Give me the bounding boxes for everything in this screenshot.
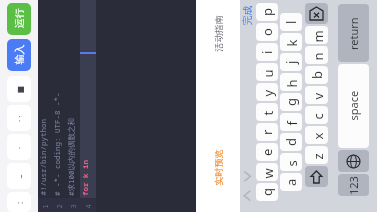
button[interactable]: 活动指南 xyxy=(213,16,224,52)
staticText: v xyxy=(308,92,326,99)
staticText: · · xyxy=(14,115,25,122)
button[interactable]: f xyxy=(280,113,302,131)
button[interactable]: b xyxy=(305,66,328,84)
staticText: : xyxy=(14,201,25,204)
staticText: o xyxy=(258,28,276,36)
button[interactable]: – xyxy=(7,163,31,189)
button[interactable]: q xyxy=(256,183,278,201)
staticText: 输入 xyxy=(12,44,25,64)
staticText: q xyxy=(258,188,276,196)
button[interactable]: c xyxy=(305,106,328,124)
staticText: s xyxy=(282,159,300,166)
staticText: t xyxy=(258,110,276,115)
button[interactable]: : xyxy=(7,192,31,212)
staticText: 4 xyxy=(83,203,93,208)
staticText: 1 xyxy=(40,203,50,208)
staticText: y xyxy=(258,89,276,96)
staticText: · xyxy=(14,146,25,149)
staticText: – xyxy=(14,174,25,178)
button[interactable]: · xyxy=(7,134,31,160)
staticText: w xyxy=(258,167,276,178)
staticText: k xyxy=(282,39,300,46)
button[interactable]: return xyxy=(338,4,369,62)
staticText: # -*- coding: UTF-8 -*- xyxy=(52,92,62,196)
staticText: m xyxy=(308,29,326,42)
button[interactable]: k xyxy=(280,33,302,51)
staticText: r xyxy=(258,129,276,135)
button[interactable]: Switch keyboard xyxy=(338,150,369,172)
staticText: return xyxy=(346,17,361,50)
button[interactable]: 实时预览 xyxy=(213,150,224,186)
staticText: g xyxy=(282,98,300,106)
staticText: x xyxy=(308,132,326,139)
button[interactable]: l xyxy=(280,13,302,31)
button[interactable]: o xyxy=(256,23,278,41)
button[interactable]: m xyxy=(305,26,328,44)
staticText: for k in xyxy=(80,160,90,196)
button[interactable]: 完成 xyxy=(241,6,254,26)
button[interactable]: space xyxy=(338,64,369,148)
staticText: l xyxy=(282,20,300,24)
button[interactable]: p xyxy=(256,3,278,21)
staticText: 运行 xyxy=(12,8,25,28)
staticText: d xyxy=(282,138,300,146)
button[interactable]: h xyxy=(280,73,302,91)
button[interactable]: · · xyxy=(7,105,31,131)
staticText: b xyxy=(308,71,326,79)
button[interactable]: n xyxy=(305,46,328,64)
staticText: j xyxy=(282,60,300,64)
staticText: a xyxy=(282,178,300,186)
button[interactable]: r xyxy=(256,123,278,141)
button[interactable]: x xyxy=(305,126,328,144)
button[interactable]: w xyxy=(256,163,278,181)
staticText: u xyxy=(258,68,276,77)
button[interactable]: t xyxy=(256,103,278,121)
button[interactable]: d xyxy=(280,133,302,151)
staticText: #!/usr/bin/python xyxy=(37,118,47,195)
staticText: i xyxy=(258,50,276,54)
button[interactable]: 输入 xyxy=(7,39,31,71)
staticText: 完成 xyxy=(240,5,253,25)
staticText: 3 xyxy=(68,203,78,208)
button[interactable]: y xyxy=(256,83,278,101)
staticText: z xyxy=(308,152,326,159)
staticText: e xyxy=(258,148,276,156)
button[interactable]: 运行 xyxy=(7,3,31,35)
button[interactable]: j xyxy=(280,53,302,71)
staticText: n xyxy=(308,51,326,60)
staticText: p xyxy=(258,8,276,16)
button[interactable]: g xyxy=(280,93,302,111)
staticText: 2 xyxy=(54,203,64,208)
button[interactable]: v xyxy=(305,86,328,104)
staticText: ■ xyxy=(15,85,24,93)
button[interactable]: a xyxy=(280,173,302,191)
button[interactable]: i xyxy=(256,43,278,61)
staticText: 实时预览 xyxy=(212,149,223,185)
button[interactable]: z xyxy=(305,146,328,164)
other: Previous and next field xyxy=(241,164,254,208)
button[interactable]: 123 xyxy=(338,174,369,196)
staticText: #求100以内的偶数之和 xyxy=(66,118,76,196)
staticText: c xyxy=(308,112,326,119)
button[interactable]: Shift xyxy=(305,166,328,187)
button[interactable]: s xyxy=(280,153,302,171)
staticText: h xyxy=(282,78,300,87)
button[interactable]: e xyxy=(256,143,278,161)
staticText: 活动指南 xyxy=(212,15,223,51)
button[interactable]: ■ xyxy=(7,76,31,102)
button[interactable]: u xyxy=(256,63,278,81)
staticText: f xyxy=(282,120,300,125)
staticText: 123 xyxy=(346,176,361,195)
button[interactable]: Delete xyxy=(305,3,328,24)
staticText: space xyxy=(345,90,360,120)
